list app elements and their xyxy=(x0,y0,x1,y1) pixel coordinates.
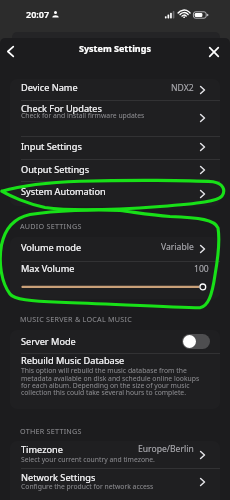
staticText: This option will rebuild the music datab… xyxy=(21,366,207,397)
staticText: 100 xyxy=(194,263,209,275)
staticText: Rebuild Music Database xyxy=(21,354,125,367)
button[interactable]: Check For Updates xyxy=(10,100,220,136)
button[interactable]: Input Settings xyxy=(10,136,220,158)
button[interactable]: Device Name xyxy=(10,79,220,100)
staticText: Check for and install firmware updates xyxy=(21,111,145,120)
staticText: Input Settings xyxy=(21,140,82,153)
staticText: MUSIC SERVER & LOCAL MUSIC xyxy=(20,314,132,324)
staticText: System Automation xyxy=(21,185,106,198)
staticText: Volume mode xyxy=(21,241,82,254)
button[interactable]: Rebuild Music Database xyxy=(10,353,220,410)
button[interactable]: Timezone xyxy=(10,441,220,469)
staticText: Europe/Berlin xyxy=(138,443,194,455)
staticText: Timezone xyxy=(21,443,63,456)
staticText: Check For Updates xyxy=(21,102,102,115)
staticText: OTHER SETTINGS xyxy=(20,426,82,436)
button[interactable]: Network Settings xyxy=(10,468,220,496)
staticText: Configure the product for network access xyxy=(21,482,154,491)
staticText: NDX2 xyxy=(171,82,194,94)
staticText: Max Volume xyxy=(21,262,75,275)
staticText: 20:07 xyxy=(26,8,50,20)
staticText: Device Name xyxy=(21,81,78,94)
staticText: AUDIO SETTINGS xyxy=(20,221,82,231)
staticText: System Settings xyxy=(79,42,151,54)
button[interactable]: Back xyxy=(1,38,19,65)
staticText: Select your current country and timezone… xyxy=(21,455,155,464)
staticText: Server Mode xyxy=(21,335,76,348)
button[interactable]: Output Settings xyxy=(10,159,220,181)
staticText: Network Settings xyxy=(21,471,96,484)
button[interactable]: System Automation xyxy=(10,181,220,206)
staticText: Variable xyxy=(161,241,194,253)
button[interactable]: Volume mode xyxy=(10,237,220,261)
button[interactable]: Server Mode xyxy=(10,330,220,353)
button[interactable]: Max Volume xyxy=(10,261,220,300)
staticText: Output Settings xyxy=(21,163,90,176)
button[interactable]: Close xyxy=(204,38,224,65)
